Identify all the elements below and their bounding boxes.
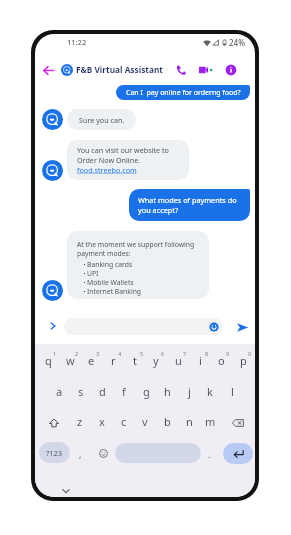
button[interactable]: Space: [115, 443, 201, 463]
button[interactable]: At the moment we support following: [67, 231, 209, 299]
button[interactable]: v: [134, 409, 156, 433]
button[interactable]: a: [48, 379, 70, 403]
button[interactable]: Send: [234, 319, 250, 335]
button[interactable]: o: [210, 348, 232, 372]
button[interactable]: b: [156, 409, 178, 433]
button[interactable]: q: [37, 348, 59, 372]
staticText: y: [153, 353, 159, 368]
staticText: p: [240, 353, 247, 368]
staticText: Can I pay online for orderng food?: [126, 88, 241, 98]
button[interactable]: g: [135, 379, 157, 403]
button[interactable]: r: [102, 348, 124, 372]
staticText: l: [231, 384, 234, 399]
button[interactable]: .: [200, 442, 218, 465]
staticText: payment modes:: [77, 249, 131, 258]
button[interactable]: Enter: [223, 443, 253, 464]
button[interactable]: You can visit our website to: [67, 140, 189, 180]
staticText: 5: [140, 350, 144, 357]
staticText: What modes of payments do you accept?: [138, 195, 250, 215]
staticText: x: [99, 414, 105, 429]
button[interactable]: Info: [223, 62, 238, 77]
button[interactable]: h: [156, 379, 178, 403]
button[interactable]: ,: [71, 442, 89, 465]
button[interactable]: m: [199, 409, 221, 433]
staticText: t: [133, 353, 137, 368]
staticText: k: [207, 384, 213, 399]
button[interactable]: What modes of payments do you accept?: [129, 189, 250, 221]
staticText: .: [208, 448, 211, 460]
button[interactable]: s: [70, 379, 92, 403]
button[interactable]: Emoji: [209, 322, 219, 332]
button[interactable]: Video call: [198, 62, 214, 78]
staticText: ?123: [46, 448, 63, 458]
staticText: 7: [183, 350, 187, 357]
staticText: h: [164, 384, 171, 399]
button[interactable]: Can I pay online for orderng food?: [116, 85, 250, 100]
staticText: n: [186, 414, 193, 429]
staticText: w: [66, 353, 75, 368]
staticText: a: [56, 384, 63, 399]
staticText: v: [142, 414, 148, 429]
staticText: 1: [53, 350, 57, 357]
button[interactable]: Shift: [41, 411, 67, 435]
button[interactable]: i: [189, 348, 211, 372]
button[interactable]: x: [91, 409, 113, 433]
button[interactable]: Back: [40, 62, 56, 78]
staticText: o: [218, 353, 225, 368]
button[interactable]: Call: [173, 62, 188, 77]
button[interactable]: w: [59, 348, 81, 372]
staticText: u: [175, 353, 182, 368]
staticText: You can visit our website to: [77, 145, 169, 155]
button[interactable]: e: [80, 348, 102, 372]
staticText: 0: [248, 350, 252, 357]
button[interactable]: Backspace: [225, 411, 251, 435]
staticText: Order Now Online.: [77, 155, 141, 165]
button[interactable]: l: [221, 379, 243, 403]
staticText: Internet Banking: [87, 287, 142, 296]
button[interactable]: n: [178, 409, 200, 433]
staticText: s: [78, 384, 84, 399]
staticText: 2: [75, 350, 79, 357]
button[interactable]: p: [232, 348, 254, 372]
staticText: 8: [205, 350, 209, 357]
staticText: c: [121, 414, 127, 429]
staticText: UPI: [87, 269, 99, 278]
staticText: 3: [96, 350, 100, 357]
button[interactable]: u: [167, 348, 189, 372]
staticText: 11:22: [67, 37, 87, 47]
staticText: F&B Virtual Assistant: [76, 64, 163, 75]
staticText: b: [164, 414, 171, 429]
staticText: ,: [79, 448, 82, 460]
button[interactable]: j: [178, 379, 200, 403]
staticText: q: [45, 353, 52, 368]
staticText: 6: [161, 350, 165, 357]
button[interactable]: ?123: [39, 442, 70, 463]
button[interactable]: z: [69, 409, 91, 433]
button[interactable]: Sure you can.: [67, 109, 136, 130]
button[interactable]: Expand: [45, 318, 61, 334]
staticText: f: [122, 384, 126, 399]
button[interactable]: c: [113, 409, 135, 433]
staticText: At the moment we support following: [77, 240, 195, 249]
button[interactable]: f: [113, 379, 135, 403]
staticText: j: [188, 384, 191, 399]
staticText: d: [99, 384, 106, 399]
button[interactable]: food.streebo.com: [77, 165, 137, 175]
staticText: 4: [118, 350, 122, 357]
staticText: 9: [226, 350, 230, 357]
button[interactable]: Emoji: [93, 442, 113, 465]
staticText: m: [205, 414, 216, 429]
staticText: i: [199, 353, 202, 368]
button[interactable]: Hide keyboard: [60, 485, 72, 497]
staticText: Banking cards: [87, 260, 133, 269]
button[interactable]: Emoji: [64, 318, 223, 335]
button[interactable]: y: [145, 348, 167, 372]
staticText: g: [143, 384, 150, 399]
staticText: r: [111, 353, 116, 368]
staticText: e: [88, 353, 95, 368]
staticText: 24%: [229, 37, 245, 48]
button[interactable]: k: [199, 379, 221, 403]
button[interactable]: d: [91, 379, 113, 403]
button[interactable]: t: [124, 348, 146, 372]
staticText: Mobile Wallets: [87, 278, 134, 287]
